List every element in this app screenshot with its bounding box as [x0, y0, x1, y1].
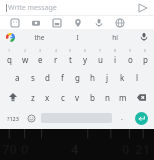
staticText: o	[128, 54, 133, 65]
staticText: v	[75, 92, 80, 103]
staticText: z	[31, 92, 35, 103]
staticText: 4	[71, 140, 79, 158]
button[interactable]: Sticker	[4, 16, 25, 29]
staticText: r	[54, 54, 58, 65]
staticText: c	[61, 92, 65, 103]
staticText: p	[143, 54, 148, 65]
button[interactable]: ?123	[1, 107, 24, 129]
button[interactable]: the	[20, 29, 58, 45]
staticText: the	[34, 33, 45, 42]
button[interactable]: I	[58, 29, 96, 45]
button[interactable]: d	[40, 67, 55, 87]
button[interactable]: hi	[96, 29, 134, 45]
button[interactable]: Emoji	[24, 107, 39, 129]
staticText: 1	[8, 48, 11, 53]
button[interactable]: Send	[136, 1, 150, 15]
button[interactable]: Write message	[0, 0, 154, 15]
staticText: 4	[55, 48, 58, 53]
button[interactable]: h	[85, 67, 100, 87]
staticText: hi	[112, 33, 118, 42]
staticText: h	[90, 72, 95, 83]
staticText: s	[31, 72, 35, 83]
button[interactable]: k	[115, 67, 130, 87]
staticText: g	[75, 72, 80, 83]
staticText: 70	[2, 140, 17, 158]
staticText: 0	[21, 140, 29, 158]
staticText: k	[120, 72, 125, 83]
button[interactable]: Camera	[25, 16, 46, 29]
staticText: I	[76, 33, 79, 42]
staticText: b	[90, 92, 95, 103]
button[interactable]: Backspace	[130, 87, 153, 107]
button[interactable]: l	[130, 67, 145, 87]
button[interactable]: 5	[63, 45, 78, 67]
staticText: .	[121, 113, 123, 123]
button[interactable]: Voice input	[134, 29, 154, 45]
button[interactable]: 2	[17, 45, 33, 67]
staticText: u	[98, 54, 103, 65]
staticText: 2	[24, 48, 27, 53]
button[interactable]: Gallery	[46, 16, 67, 29]
button[interactable]: z	[25, 87, 40, 107]
staticText: m	[119, 92, 127, 103]
staticText: n	[105, 92, 110, 103]
button[interactable]: s	[25, 67, 40, 87]
button[interactable]: 0	[138, 45, 153, 67]
staticText: w	[22, 54, 29, 65]
staticText: 0	[122, 140, 130, 158]
button[interactable]: 3	[33, 45, 48, 67]
button[interactable]: Shift	[1, 87, 25, 107]
staticText: a	[15, 72, 20, 83]
button[interactable]: 9	[123, 45, 138, 67]
button[interactable]: .	[114, 107, 129, 129]
staticText: e	[38, 54, 43, 65]
button[interactable]: Enter	[129, 107, 153, 129]
button[interactable]: 1	[1, 45, 17, 67]
staticText: 8	[114, 48, 117, 53]
button[interactable]: c	[55, 87, 70, 107]
button[interactable]: g	[70, 67, 85, 87]
staticText: f	[61, 72, 64, 83]
button[interactable]: More	[109, 16, 130, 29]
staticText: 3	[39, 48, 42, 53]
button[interactable]: m	[115, 87, 130, 107]
button[interactable]: v	[70, 87, 85, 107]
staticText: 21	[135, 140, 150, 158]
staticText: 6	[84, 48, 87, 53]
button[interactable]: f	[55, 67, 70, 87]
button[interactable]: 8	[108, 45, 123, 67]
button[interactable]: 6	[78, 45, 93, 67]
button[interactable]: Location	[67, 16, 88, 29]
button[interactable]: Google	[0, 29, 20, 45]
staticText: x	[45, 92, 50, 103]
button[interactable]: j	[100, 67, 115, 87]
staticText: y	[83, 54, 88, 65]
button[interactable]: b	[85, 87, 100, 107]
button[interactable]: a	[10, 67, 25, 87]
button[interactable]: Voice	[88, 16, 109, 29]
button[interactable]: 4	[48, 45, 63, 67]
button[interactable]: 7	[93, 45, 108, 67]
staticText: q	[7, 54, 12, 65]
staticText: 7	[99, 48, 102, 53]
staticText: 9	[129, 48, 132, 53]
staticText: ?123	[7, 115, 19, 122]
staticText: d	[45, 72, 50, 83]
staticText: i	[114, 54, 117, 65]
staticText: l	[136, 72, 139, 83]
button[interactable]: x	[40, 87, 55, 107]
staticText: j	[106, 72, 109, 83]
staticText: 5	[69, 48, 72, 53]
staticText: 0	[144, 48, 147, 53]
button[interactable]: n	[100, 87, 115, 107]
staticText: t	[69, 54, 72, 65]
staticText: Write message	[8, 3, 57, 13]
